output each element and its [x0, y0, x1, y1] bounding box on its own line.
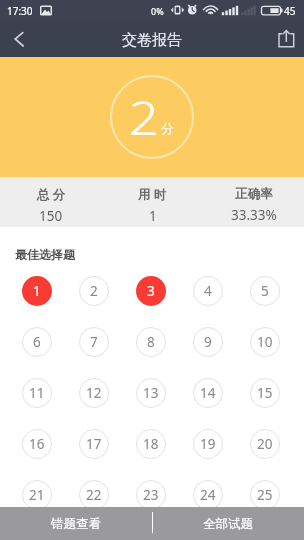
button[interactable]: 24: [193, 480, 223, 510]
button[interactable]: 7: [79, 327, 109, 357]
staticText: 正确率: [235, 186, 273, 202]
button[interactable]: 13: [136, 378, 166, 408]
button[interactable]: 9: [193, 327, 223, 357]
staticText: 17: [86, 435, 102, 453]
staticText: 18: [143, 435, 159, 453]
staticText: 分: [161, 120, 174, 136]
button[interactable]: 6: [22, 327, 52, 357]
button[interactable]: 20: [250, 429, 280, 459]
staticText: 8: [147, 333, 155, 351]
button[interactable]: Share: [268, 21, 304, 57]
staticText: 9: [204, 333, 212, 351]
button[interactable]: 17: [79, 429, 109, 459]
button[interactable]: 11: [22, 378, 52, 408]
staticText: 23: [143, 486, 159, 504]
button[interactable]: 错题查看: [0, 507, 152, 540]
staticText: 16: [29, 435, 45, 453]
staticText: 交卷报告: [122, 31, 182, 50]
staticText: 2: [90, 282, 98, 300]
staticText: 10: [257, 333, 273, 351]
staticText: 33.33%: [231, 206, 277, 224]
staticText: 21: [29, 486, 45, 504]
button[interactable]: 23: [136, 480, 166, 510]
button[interactable]: 12: [79, 378, 109, 408]
staticText: 3: [147, 282, 155, 300]
staticText: 错题查看: [51, 516, 101, 532]
staticText: 全部试题: [203, 516, 253, 532]
staticText: 11: [29, 384, 45, 402]
button[interactable]: 21: [22, 480, 52, 510]
button[interactable]: 10: [250, 327, 280, 357]
staticText: 14: [200, 384, 216, 402]
staticText: 6: [33, 333, 41, 351]
button[interactable]: 16: [22, 429, 52, 459]
staticText: 13: [143, 384, 159, 402]
staticText: 最佳选择题: [15, 247, 75, 262]
staticText: 22: [86, 486, 102, 504]
button[interactable]: 4: [193, 276, 223, 306]
staticText: 25: [257, 486, 273, 504]
button[interactable]: 25: [250, 480, 280, 510]
button[interactable]: Back: [0, 21, 36, 57]
staticText: 45: [284, 4, 296, 18]
button[interactable]: 5: [250, 276, 280, 306]
button[interactable]: 15: [250, 378, 280, 408]
staticText: 20: [257, 435, 273, 453]
staticText: 1: [33, 282, 41, 300]
staticText: 4: [204, 282, 212, 300]
button[interactable]: 全部试题: [152, 507, 304, 540]
staticText: 1: [149, 207, 157, 225]
staticText: 24: [200, 486, 216, 504]
staticText: 17:30: [7, 4, 33, 18]
staticText: 用 时: [138, 186, 167, 203]
staticText: 7: [90, 333, 98, 351]
button[interactable]: 3: [136, 276, 166, 306]
button[interactable]: 2: [79, 276, 109, 306]
staticText: 总 分: [37, 186, 66, 203]
button[interactable]: 18: [136, 429, 166, 459]
staticText: 150: [39, 207, 63, 225]
staticText: 2: [129, 87, 159, 148]
staticText: 19: [200, 435, 216, 453]
button[interactable]: 19: [193, 429, 223, 459]
button[interactable]: 14: [193, 378, 223, 408]
staticText: 0%: [151, 5, 164, 17]
button[interactable]: 1: [22, 276, 52, 306]
button[interactable]: 8: [136, 327, 166, 357]
staticText: 12: [86, 384, 102, 402]
staticText: 15: [257, 384, 273, 402]
button[interactable]: 22: [79, 480, 109, 510]
staticText: 5: [261, 282, 269, 300]
